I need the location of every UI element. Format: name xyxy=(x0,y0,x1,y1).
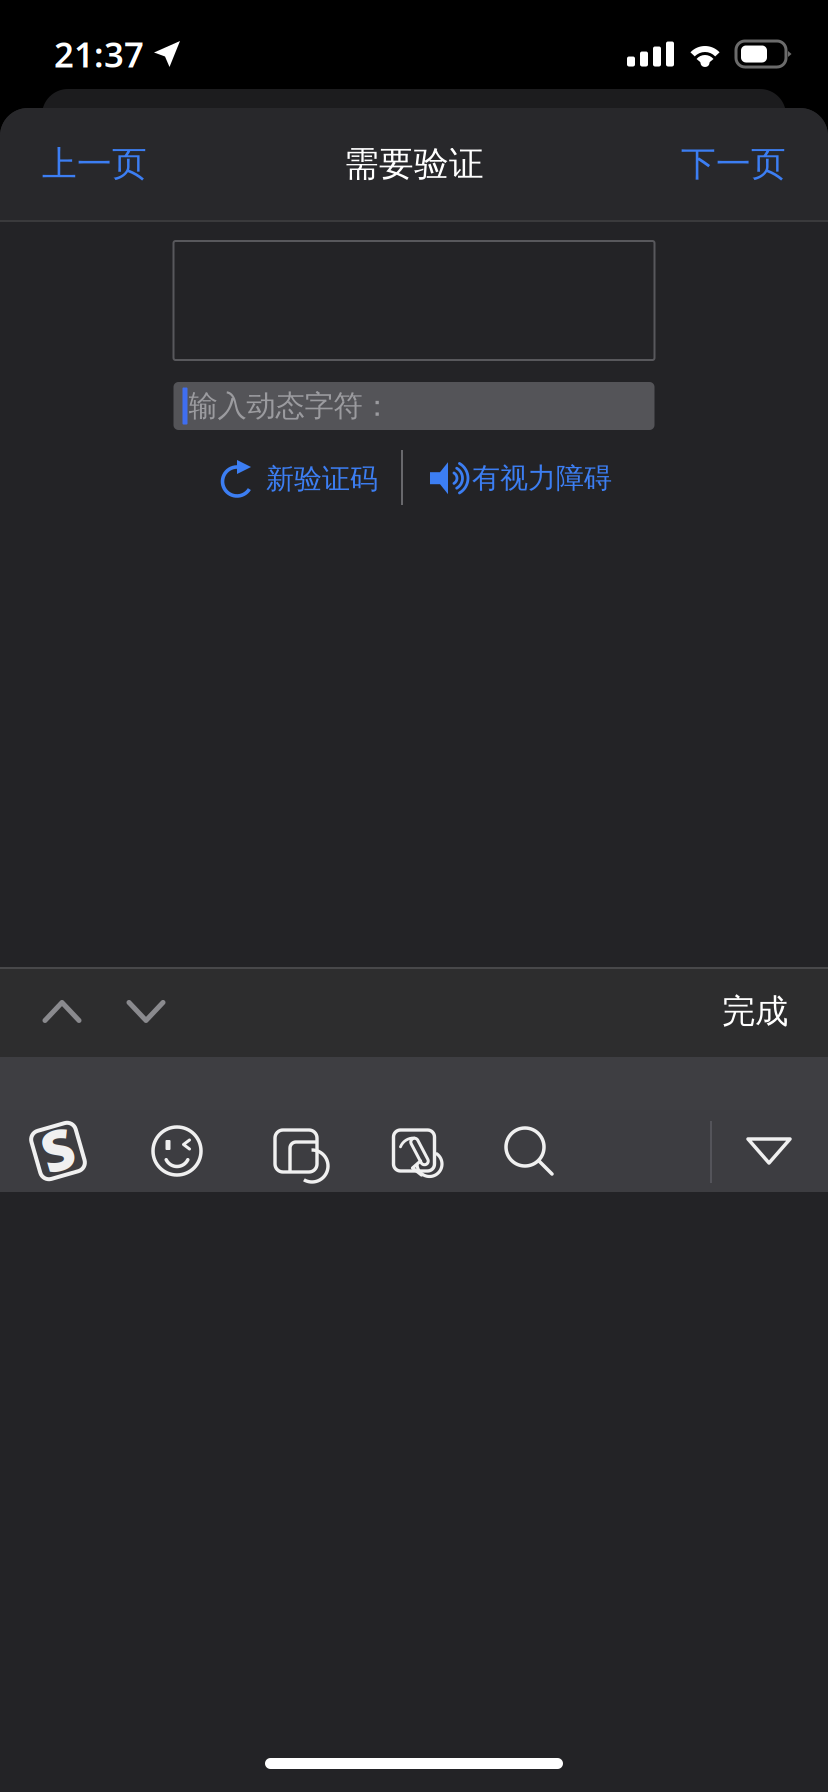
staticText: 新验证码 xyxy=(266,462,378,496)
button[interactable]: 上一页 xyxy=(26,125,163,203)
button[interactable]: Sogou input method xyxy=(17,1110,99,1192)
button[interactable]: Previous field xyxy=(20,967,104,1055)
button[interactable]: 新验证码 xyxy=(208,444,390,514)
button[interactable]: 有视力障碍 xyxy=(409,445,624,511)
staticText: 21:37 xyxy=(54,31,144,77)
staticText: 需要验证 xyxy=(344,143,484,185)
staticText: 上一页 xyxy=(42,143,147,185)
button[interactable]: 下一页 xyxy=(665,125,802,203)
staticText: S xyxy=(42,1112,74,1186)
button[interactable]: Handwriting xyxy=(373,1110,455,1192)
button[interactable]: Next field xyxy=(104,967,188,1055)
button[interactable]: Clipboard xyxy=(255,1110,337,1192)
staticText: 输入动态字符： xyxy=(188,388,391,424)
staticText: 完成 xyxy=(722,991,788,1032)
button[interactable]: Hide keyboard xyxy=(710,1110,828,1192)
staticText: 有视力障碍 xyxy=(472,461,612,495)
button[interactable]: Search xyxy=(488,1110,570,1192)
button[interactable]: 完成 xyxy=(702,967,808,1056)
button[interactable]: Emoji xyxy=(136,1110,218,1192)
staticText: 下一页 xyxy=(681,143,786,185)
